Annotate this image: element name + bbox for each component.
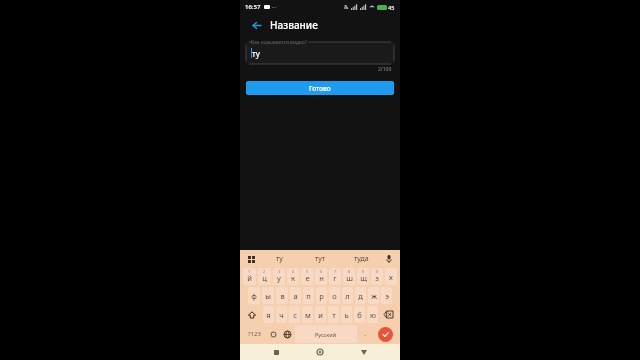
staticText: б <box>357 310 362 320</box>
staticText: ш <box>346 273 353 283</box>
button[interactable]: ф <box>248 287 260 304</box>
staticText: ю <box>370 310 376 320</box>
button[interactable]: Shift <box>243 306 261 323</box>
button[interactable]: р <box>316 287 327 304</box>
button[interactable] <box>246 42 394 64</box>
staticText: 5 <box>306 269 309 274</box>
button[interactable]: Enter <box>378 327 393 342</box>
button[interactable]: л <box>342 287 353 304</box>
button[interactable]: б <box>354 306 365 323</box>
button[interactable]: с <box>289 306 300 323</box>
staticText: ту <box>276 254 283 264</box>
button[interactable]: Voice input <box>382 252 396 266</box>
staticText: щ <box>360 273 367 283</box>
staticText: н <box>319 273 324 283</box>
staticText: 7 <box>334 269 337 274</box>
staticText: ?123 <box>248 330 261 338</box>
button[interactable]: Русский <box>295 325 357 343</box>
staticText: Готово <box>309 84 331 93</box>
staticText: 2 <box>263 269 266 274</box>
staticText: и <box>318 310 323 320</box>
button[interactable]: Back <box>356 344 372 360</box>
staticText: Название <box>270 18 318 32</box>
button[interactable]: туда <box>341 250 382 267</box>
button[interactable]: д <box>355 287 366 304</box>
staticText: ж <box>371 291 377 301</box>
staticText: й <box>247 273 252 283</box>
button[interactable]: 8 <box>343 268 355 285</box>
button[interactable]: Backspace <box>380 306 397 323</box>
staticText: ы <box>265 291 271 301</box>
button[interactable]: о <box>329 287 340 304</box>
staticText: е <box>305 273 310 283</box>
staticText: ф <box>251 291 257 301</box>
button[interactable]: 5 <box>301 268 313 285</box>
button[interactable]: Back <box>248 17 264 33</box>
button[interactable]: а <box>290 287 301 304</box>
button[interactable]: м <box>302 306 313 323</box>
staticText: ь <box>344 310 349 320</box>
staticText: ц <box>262 273 267 283</box>
staticText: г <box>333 273 337 283</box>
staticText: а <box>293 291 298 301</box>
button[interactable]: ч <box>276 306 287 323</box>
staticText: 9 <box>362 269 365 274</box>
button[interactable]: в <box>276 287 288 304</box>
staticText: 4 <box>292 269 295 274</box>
button[interactable]: я <box>263 306 274 323</box>
button[interactable]: т <box>328 306 339 323</box>
staticText: л <box>345 291 350 301</box>
button[interactable]: ж <box>368 287 379 304</box>
button[interactable]: ту <box>258 250 300 267</box>
staticText: 16:57 <box>245 3 261 11</box>
button[interactable]: Change language <box>280 325 294 343</box>
staticText: тут <box>315 254 326 264</box>
button[interactable]: э <box>381 287 392 304</box>
button[interactable]: п <box>303 287 314 304</box>
button[interactable]: 0 <box>371 268 383 285</box>
staticText: в <box>280 291 285 301</box>
staticText: р <box>319 291 324 301</box>
staticText: я <box>266 310 271 320</box>
staticText: 3 <box>278 269 281 274</box>
button[interactable]: ь <box>341 306 352 323</box>
button[interactable]: 9 <box>357 268 369 285</box>
staticText: 8 <box>348 269 351 274</box>
button[interactable]: и <box>315 306 326 323</box>
button[interactable]: Recents <box>268 344 284 360</box>
staticText: 2/100 <box>378 66 392 73</box>
button[interactable]: . <box>358 325 372 343</box>
button[interactable]: ?123 <box>242 325 266 343</box>
staticText: д <box>358 291 363 301</box>
button[interactable]: Clipboard <box>244 252 258 266</box>
staticText: 45 <box>388 4 395 11</box>
button[interactable]: Emoji <box>266 325 280 343</box>
staticText: ч <box>279 310 284 320</box>
staticText: с <box>293 310 297 320</box>
staticText: п <box>306 291 311 301</box>
button[interactable]: Готово <box>246 81 394 95</box>
staticText: т <box>332 310 336 320</box>
button[interactable]: ы <box>262 287 274 304</box>
button[interactable]: 6 <box>315 268 327 285</box>
staticText: туда <box>354 254 369 264</box>
button[interactable]: 2 <box>258 268 271 285</box>
staticText: 0 <box>376 269 379 274</box>
staticText: . <box>364 329 366 339</box>
staticText: Как называется видео? <box>251 39 307 46</box>
staticText: 6 <box>320 269 323 274</box>
staticText: ту <box>252 48 260 59</box>
button[interactable]: 3 <box>273 268 285 285</box>
staticText: м <box>305 310 311 320</box>
staticText: к <box>291 273 295 283</box>
staticText: х <box>389 272 393 282</box>
button[interactable]: 1 <box>243 268 256 285</box>
staticText: ··· <box>272 4 277 11</box>
button[interactable]: ю <box>367 306 378 323</box>
button[interactable]: 4 <box>287 268 299 285</box>
button[interactable]: х <box>385 268 397 285</box>
button[interactable]: Home <box>312 344 328 360</box>
button[interactable]: 7 <box>329 268 341 285</box>
staticText: о <box>332 291 337 301</box>
button[interactable]: тут <box>300 250 341 267</box>
